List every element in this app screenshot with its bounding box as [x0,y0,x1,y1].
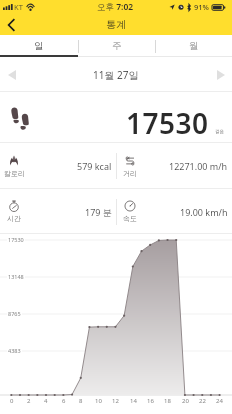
staticText: 10 [95,397,102,405]
staticText: 18 [164,397,171,405]
staticText: 12271.00 m/h [169,160,228,172]
staticText: 13148 [8,273,24,280]
staticText: 8765 [8,310,21,317]
staticText: 일 [34,40,44,52]
staticText: 칼로리 [4,169,25,178]
button[interactable]: 속도 [116,189,232,234]
staticText: 12 [112,397,119,405]
button[interactable]: 거리 [116,143,232,189]
button[interactable]: 칼로리 [0,143,116,189]
staticText: 19.00 km/h [180,206,228,218]
staticText: 24 [216,397,223,405]
staticText: 579 kcal [77,160,112,172]
button[interactable]: 일 [0,35,78,57]
staticText: 속도 [123,214,137,223]
staticText: 8 [79,397,83,405]
staticText: 4 [44,397,48,405]
staticText: 걸음 [215,129,224,135]
button[interactable]: 월 [155,35,232,57]
staticText: 17530 [8,236,24,243]
button[interactable]: Previous day [1,64,22,85]
staticText: 2 [27,397,31,405]
staticText: 4383 [8,347,21,354]
staticText: 20 [182,397,189,405]
staticText: 통계 [106,18,126,31]
button[interactable]: Back [1,14,22,35]
staticText: 6 [62,397,66,405]
staticText: 11월 27일 [93,68,139,82]
button[interactable]: Next day [210,64,231,85]
button[interactable]: 주 [78,35,155,57]
staticText: 거리 [123,169,137,178]
staticText: 16 [147,397,154,405]
staticText: 22 [199,397,206,405]
staticText: KT [14,2,23,12]
staticText: 월 [189,40,199,52]
staticText: 14 [130,397,137,405]
button[interactable]: 시간 [0,189,116,234]
staticText: 시간 [7,214,21,223]
staticText: 0 [10,397,14,405]
staticText: 오후 7:02 [97,1,134,13]
staticText: 17530 [126,104,209,142]
staticText: 179 분 [85,206,112,218]
staticText: 주 [112,40,122,52]
staticText: 91% [194,2,209,12]
